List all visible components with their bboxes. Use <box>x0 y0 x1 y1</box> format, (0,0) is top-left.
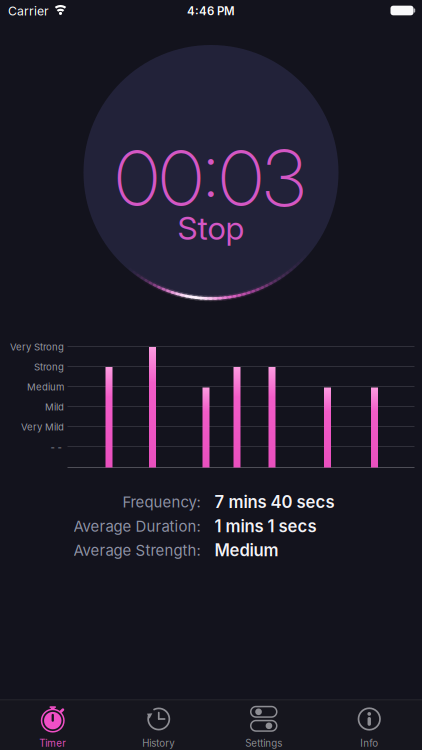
staticText: Average Duration: <box>73 517 200 535</box>
staticText: 1 mins 1 secs <box>214 516 316 536</box>
staticText: Info <box>360 737 378 749</box>
staticText: Very Strong <box>10 341 64 353</box>
staticText: - - <box>50 441 61 453</box>
button[interactable]: Settings <box>211 699 316 750</box>
staticText: Very Mild <box>21 421 64 433</box>
staticText: Timer <box>39 737 66 749</box>
button[interactable]: History <box>105 699 211 750</box>
staticText: History <box>142 737 174 749</box>
staticText: Medium <box>27 381 64 393</box>
button[interactable]: Timer <box>0 699 105 750</box>
staticText: 00:03 <box>115 132 305 224</box>
staticText: Stop <box>177 209 244 247</box>
staticText: 7 mins 40 secs <box>214 492 334 512</box>
staticText: Average Strength: <box>73 541 200 559</box>
button[interactable]: 00:03 <box>83 45 338 300</box>
staticText: Medium <box>214 540 278 560</box>
staticText: Mild <box>45 401 64 413</box>
staticText: Strong <box>34 361 64 373</box>
staticText: 4:46 PM <box>187 4 235 18</box>
staticText: Frequency: <box>122 493 200 511</box>
button[interactable]: Info <box>316 699 422 750</box>
staticText: Settings <box>245 737 282 749</box>
staticText: Carrier <box>8 4 49 18</box>
